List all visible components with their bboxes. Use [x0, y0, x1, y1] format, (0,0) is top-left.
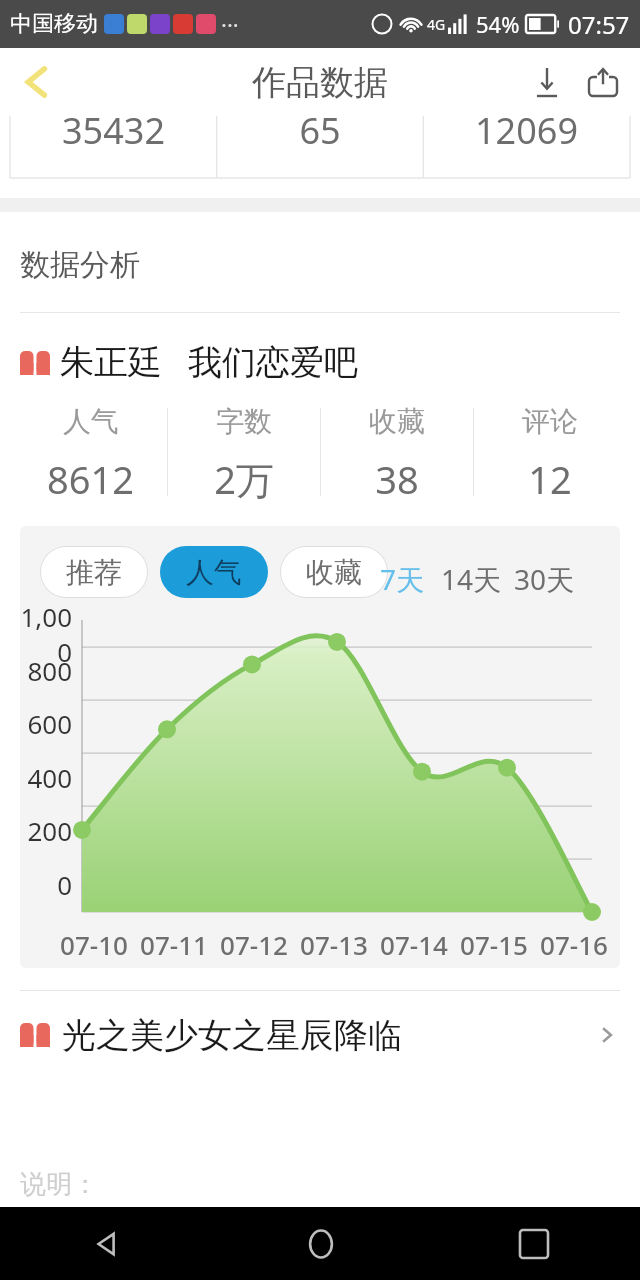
staticText: 07-12 — [214, 927, 294, 962]
staticText: 07:57 — [568, 8, 630, 41]
staticText: 30天 — [514, 560, 575, 598]
staticText: 收藏 — [369, 404, 425, 439]
staticText: 07-16 — [534, 927, 614, 962]
button[interactable]: Home — [214, 1207, 427, 1280]
staticText: 评论 — [522, 404, 578, 439]
staticText: 600 — [20, 706, 72, 741]
button[interactable]: 30天 — [514, 560, 575, 598]
button[interactable]: Download — [524, 59, 570, 105]
staticText: 人气 — [63, 404, 119, 439]
button[interactable]: 朱正廷 — [0, 341, 640, 384]
button[interactable]: Back — [0, 1207, 214, 1280]
staticText: 14天 — [441, 560, 502, 598]
staticText: ··· — [221, 9, 239, 39]
staticText: 4G — [427, 15, 446, 34]
staticText: 07-10 — [54, 927, 134, 962]
staticText: 07-11 — [134, 927, 214, 962]
button[interactable]: 人气 — [160, 546, 268, 598]
button[interactable]: Recent apps — [427, 1207, 640, 1280]
button[interactable]: 14天 — [441, 560, 502, 598]
staticText: 朱正廷 — [60, 341, 162, 384]
staticText: 7天 — [380, 560, 425, 598]
staticText: 12 — [528, 453, 572, 504]
staticText: 07-14 — [374, 927, 454, 962]
button[interactable]: 光之美少女之星辰降临 — [0, 991, 640, 1079]
staticText: 8612 — [47, 453, 134, 504]
staticText: 12069 — [475, 106, 578, 155]
staticText: 我们恋爱吧 — [188, 341, 358, 384]
button[interactable]: 推荐 — [40, 546, 148, 598]
staticText: 400 — [20, 760, 72, 795]
staticText: 54% — [476, 9, 520, 39]
staticText: 35432 — [62, 106, 165, 155]
staticText: 2万 — [214, 453, 274, 504]
staticText: 数据分析 — [20, 246, 140, 284]
button[interactable]: 收藏 — [280, 546, 388, 598]
staticText: 800 — [20, 653, 72, 688]
staticText: 中国移动 — [10, 10, 98, 38]
staticText: 07-13 — [294, 927, 374, 962]
button[interactable]: Back — [0, 52, 60, 112]
staticText: 字数 — [216, 404, 272, 439]
staticText: 1,000 — [20, 599, 72, 669]
staticText: 200 — [20, 813, 72, 848]
staticText: 收藏 — [306, 555, 362, 590]
staticText: 说明： — [20, 1168, 98, 1201]
button[interactable]: Share — [580, 59, 626, 105]
staticText: 人气 — [186, 555, 242, 590]
button[interactable]: 7天 — [380, 560, 425, 598]
staticText: 作品数据 — [252, 61, 388, 104]
staticText: 38 — [375, 453, 419, 504]
staticText: 65 — [299, 106, 341, 155]
staticText: 推荐 — [66, 555, 122, 590]
staticText: 光之美少女之星辰降临 — [62, 1014, 402, 1057]
staticText: 07-15 — [454, 927, 534, 962]
staticText: 0 — [20, 867, 72, 902]
